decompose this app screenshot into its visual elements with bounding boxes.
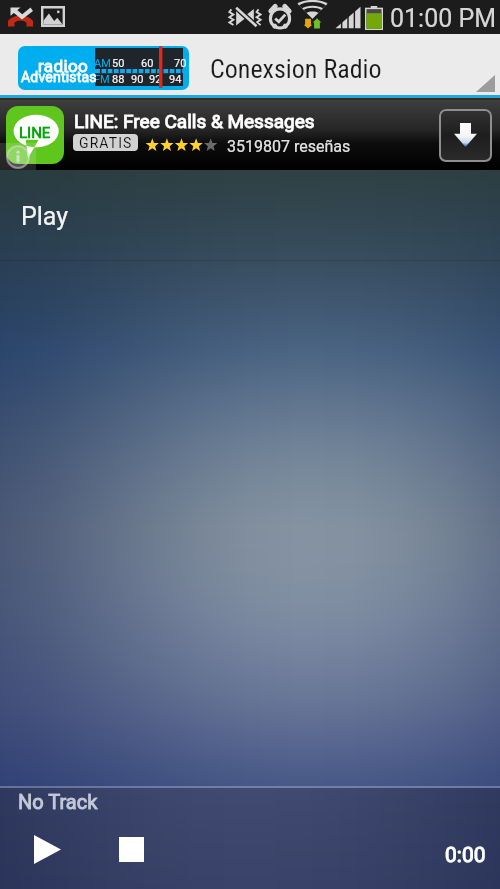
other: Wi-Fi — [298, 5, 327, 28]
button[interactable]: Ad information — [0, 143, 36, 170]
staticText: 01:00 PM — [390, 4, 497, 33]
other: Screenshot captured — [41, 6, 65, 27]
staticText: 88 — [112, 73, 125, 86]
staticText: radioo — [38, 56, 89, 76]
button[interactable]: Download — [439, 109, 492, 162]
staticText: 92 — [149, 73, 162, 86]
other: Signal strength — [335, 6, 361, 29]
staticText: 3519807 reseñas — [227, 137, 351, 156]
button[interactable]: Play — [0, 170, 500, 260]
staticText: Play — [21, 202, 69, 231]
staticText: 60 — [141, 57, 154, 70]
staticText: LINE: Free Calls & Messages — [74, 110, 315, 132]
staticText: 70 — [174, 57, 187, 70]
button[interactable]: Play — [25, 827, 69, 871]
other: Battery — [365, 6, 383, 30]
staticText: LINE — [19, 124, 51, 142]
staticText: AM — [94, 57, 111, 70]
staticText: 0:00 — [445, 843, 486, 868]
other: Missed call — [8, 7, 33, 27]
staticText: 50 — [112, 57, 125, 70]
other: More options — [476, 75, 495, 92]
button[interactable]: AM — [18, 46, 189, 90]
other: Sound off — [228, 7, 262, 27]
staticText: Adventistas — [21, 69, 97, 85]
staticText: GRATIS — [79, 135, 133, 151]
other: Alarm set — [268, 5, 292, 29]
button[interactable]: LINE — [0, 100, 500, 170]
button[interactable]: Stop — [109, 827, 153, 871]
staticText: 90 — [131, 73, 144, 86]
staticText: 94 — [169, 73, 182, 86]
staticText: Conexsion Radio — [210, 54, 382, 84]
staticText: No Track — [18, 790, 98, 813]
staticText: FM — [94, 73, 110, 86]
